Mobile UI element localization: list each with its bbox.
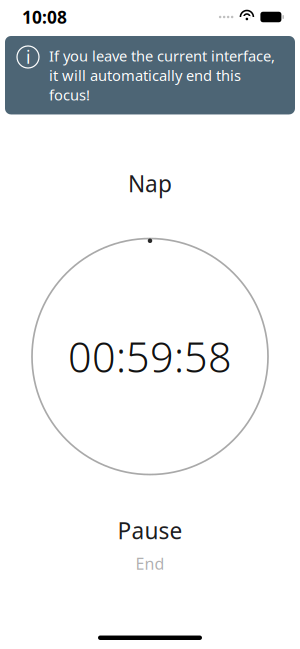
staticText: If you leave the current interface, it w…: [49, 46, 275, 104]
staticText: 10:08: [22, 5, 67, 28]
staticText: 00:59:58: [68, 329, 232, 384]
staticText: Nap: [128, 168, 172, 198]
staticText: End: [135, 553, 164, 574]
button[interactable]: Pause: [90, 517, 210, 543]
button[interactable]: End: [100, 553, 200, 573]
staticText: Pause: [117, 515, 182, 546]
staticText: i: [26, 45, 30, 68]
